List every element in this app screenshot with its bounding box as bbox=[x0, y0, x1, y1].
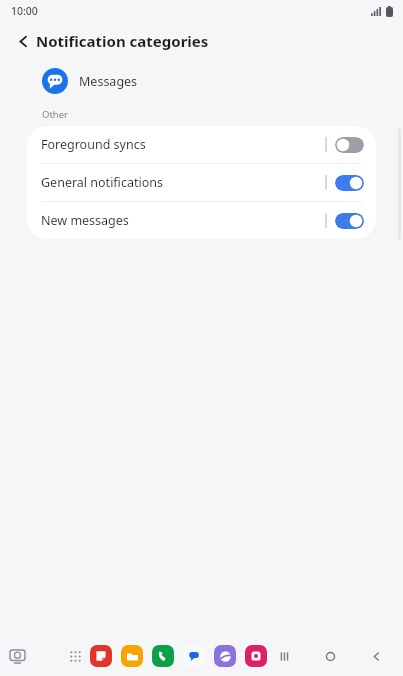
button[interactable] bbox=[121, 645, 143, 667]
button[interactable] bbox=[214, 645, 236, 667]
staticText: Other bbox=[42, 108, 69, 121]
staticText: New messages bbox=[41, 212, 325, 229]
staticText: General notifications bbox=[41, 174, 325, 191]
button[interactable]: Recents bbox=[271, 643, 297, 669]
staticText: Messages bbox=[79, 73, 138, 90]
button[interactable] bbox=[245, 645, 267, 667]
button[interactable]: On bbox=[335, 175, 364, 191]
button[interactable]: Foreground syncs bbox=[27, 126, 376, 163]
button[interactable]: Back bbox=[8, 26, 38, 56]
button[interactable]: On bbox=[335, 213, 364, 229]
button[interactable]: Home bbox=[317, 643, 343, 669]
button[interactable]: Recent apps panel bbox=[4, 643, 30, 669]
button[interactable]: Apps bbox=[63, 644, 87, 668]
button[interactable]: Back bbox=[363, 643, 389, 669]
staticText: Notification categories bbox=[36, 31, 209, 51]
button[interactable] bbox=[90, 645, 112, 667]
button[interactable]: New messages bbox=[27, 202, 376, 239]
staticText: Foreground syncs bbox=[41, 136, 325, 153]
button[interactable] bbox=[152, 645, 174, 667]
button[interactable]: Off bbox=[335, 137, 364, 153]
button[interactable] bbox=[183, 645, 205, 667]
staticText: 10:00 bbox=[11, 4, 38, 18]
button[interactable]: General notifications bbox=[27, 164, 376, 201]
